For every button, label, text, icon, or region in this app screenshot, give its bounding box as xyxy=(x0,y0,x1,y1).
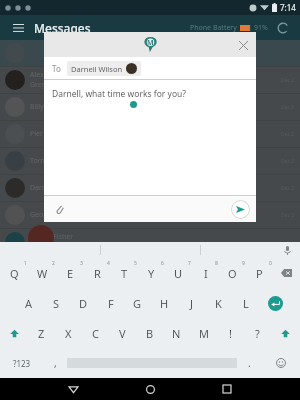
staticText: To xyxy=(52,63,61,74)
button[interactable]: F xyxy=(97,288,124,318)
button[interactable]: H xyxy=(151,288,178,318)
staticText: 6 xyxy=(161,260,164,267)
staticText: B xyxy=(146,326,154,341)
button[interactable]: Emoji xyxy=(261,348,300,378)
staticText: 2 xyxy=(52,260,55,267)
button[interactable]: N xyxy=(163,318,190,348)
staticText: H xyxy=(160,296,169,311)
button[interactable]: Refresh xyxy=(274,19,292,37)
button[interactable]: Back xyxy=(63,379,83,399)
staticText: M xyxy=(199,326,209,341)
button[interactable]: Close xyxy=(234,36,252,54)
staticText: L xyxy=(243,296,249,311)
button[interactable]: X xyxy=(55,318,82,348)
staticText: Darnell Wilson xyxy=(71,64,123,74)
button[interactable]: Home xyxy=(140,379,160,399)
staticText: G xyxy=(133,296,142,311)
staticText: 0 xyxy=(269,260,272,267)
staticText: 7:14 xyxy=(280,2,296,13)
staticText: F xyxy=(108,296,114,311)
staticText: S xyxy=(53,296,60,311)
staticText: Dec 2 xyxy=(281,131,295,138)
staticText: R xyxy=(94,266,101,281)
button[interactable]: J xyxy=(178,288,205,318)
staticText: Dec 2 xyxy=(281,185,295,192)
staticText: Tom xyxy=(30,156,45,166)
staticText: Dec 2 xyxy=(281,77,295,84)
button[interactable]: B xyxy=(136,318,163,348)
staticText: Phone Battery xyxy=(190,23,237,33)
staticText: ! xyxy=(229,326,232,341)
staticText: Dec 2 xyxy=(281,212,295,219)
button[interactable]: O xyxy=(219,258,246,288)
staticText: Messages xyxy=(34,20,91,36)
staticText: 5 xyxy=(134,260,137,267)
button[interactable]: G xyxy=(124,288,151,318)
button[interactable]: C xyxy=(82,318,109,348)
staticText: P xyxy=(256,266,263,281)
staticText: M xyxy=(147,38,154,48)
staticText: Pier xyxy=(30,129,43,139)
staticText: Y xyxy=(148,266,155,281)
staticText: Billy xyxy=(30,102,44,112)
staticText: A xyxy=(25,296,33,311)
staticText: D xyxy=(79,296,88,311)
staticText: ?123 xyxy=(13,358,31,369)
button[interactable]: Enter xyxy=(259,288,292,318)
staticText: 91% xyxy=(254,23,268,33)
button[interactable]: , xyxy=(43,348,67,378)
button[interactable]: K xyxy=(205,288,232,318)
button[interactable]: ! xyxy=(217,318,244,348)
staticText: ? xyxy=(255,326,260,341)
button[interactable]: I xyxy=(192,258,219,288)
button[interactable]: W xyxy=(28,258,56,288)
staticText: Geo xyxy=(30,210,44,220)
staticText: . xyxy=(248,356,251,370)
button[interactable]: D xyxy=(70,288,97,318)
button[interactable]: Recent apps xyxy=(217,379,237,399)
staticText: Alex Greg xyxy=(30,70,47,90)
button[interactable]: Attach file xyxy=(50,200,68,218)
button[interactable]: Darnell Wilson xyxy=(67,61,141,76)
staticText: K xyxy=(215,296,222,311)
button[interactable]: Q xyxy=(0,258,28,288)
staticText: Darnell, what time works for you? xyxy=(52,88,186,100)
staticText: Z xyxy=(38,326,45,341)
staticText: U xyxy=(174,266,183,281)
button[interactable]: ? xyxy=(244,318,271,348)
button[interactable]: P xyxy=(246,258,273,288)
staticText: Darn xyxy=(30,183,47,193)
staticText: 8 xyxy=(215,260,218,267)
button[interactable]: Send xyxy=(231,200,250,219)
staticText: Q xyxy=(10,266,19,281)
button[interactable]: . xyxy=(237,348,261,378)
staticText: T xyxy=(121,266,128,281)
staticText: 7 xyxy=(188,260,191,267)
button[interactable]: ?123 xyxy=(0,348,43,378)
staticText: C xyxy=(92,326,99,341)
staticText: 4 xyxy=(107,260,110,267)
staticText: 1 xyxy=(24,260,27,267)
staticText: , xyxy=(54,356,57,370)
staticText: O xyxy=(228,266,237,281)
button[interactable]: V xyxy=(109,318,136,348)
button[interactable]: Z xyxy=(28,318,55,348)
button[interactable]: L xyxy=(232,288,259,318)
button[interactable]: E xyxy=(56,258,84,288)
staticText: Dec 2 xyxy=(281,104,295,111)
button[interactable]: R xyxy=(84,258,111,288)
button[interactable]: Backspace xyxy=(273,258,300,288)
button[interactable]: A xyxy=(15,288,43,318)
button[interactable]: Shift xyxy=(271,318,300,348)
button[interactable]: Open navigation drawer xyxy=(8,18,28,38)
staticText: E xyxy=(67,266,74,281)
staticText: Ashley Fisher Tony Liang xyxy=(30,232,74,252)
button[interactable]: T xyxy=(111,258,138,288)
button[interactable]: Voice input xyxy=(280,243,294,257)
button[interactable]: U xyxy=(165,258,192,288)
button[interactable]: S xyxy=(43,288,70,318)
button[interactable]: Shift xyxy=(0,318,28,348)
button[interactable]: Y xyxy=(138,258,165,288)
button[interactable]: M xyxy=(190,318,217,348)
